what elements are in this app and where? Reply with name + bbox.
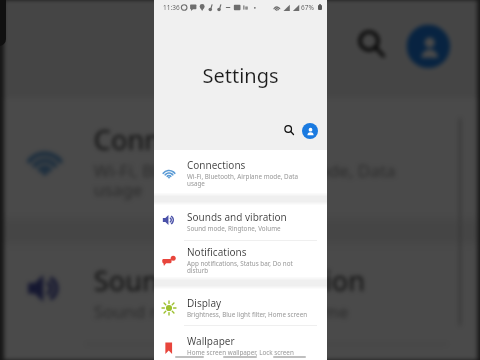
button[interactable]: Recents <box>175 356 204 358</box>
staticText: Brightness, Blue light filter, Home scre… <box>187 310 311 319</box>
staticText: Sound mode, Ringtone, Volume <box>94 299 431 324</box>
staticText: Sound mode, Ringtone, Volume <box>187 224 311 233</box>
staticText: App notifications, Status bar, Do not di… <box>187 259 311 275</box>
staticText: Notifications <box>187 245 247 259</box>
staticText: Wallpaper <box>187 334 235 348</box>
staticText: Home screen wallpaper, Lock screen <box>187 348 311 357</box>
staticText: Sounds and vibration <box>187 210 287 224</box>
button[interactable] <box>154 203 327 236</box>
button[interactable]: Search <box>278 119 299 140</box>
staticText: Connections <box>94 120 254 158</box>
staticText: 67% <box>301 3 314 12</box>
staticText: Settings <box>154 62 327 89</box>
button[interactable] <box>154 151 327 195</box>
staticText: Sounds and vibration <box>94 261 366 299</box>
button[interactable] <box>154 238 327 282</box>
button[interactable] <box>154 289 327 333</box>
button[interactable] <box>154 327 327 360</box>
staticText: Connections <box>187 158 246 172</box>
button[interactable] <box>4 337 477 360</box>
button[interactable]: Account <box>302 123 318 139</box>
staticText: Wi-Fi, Bluetooth, Airplane mode, Data us… <box>187 172 311 188</box>
button[interactable] <box>4 101 477 220</box>
button[interactable]: Account <box>407 25 450 68</box>
staticText: Display <box>187 296 222 310</box>
button[interactable]: Back <box>273 356 306 358</box>
staticText: Wi-Fi, Bluetooth, Airplane mode, Data us… <box>94 158 431 201</box>
button[interactable]: Search <box>341 14 398 71</box>
staticText: 11:36 <box>163 3 180 12</box>
button[interactable] <box>4 242 477 332</box>
button[interactable]: Home <box>223 356 257 358</box>
staticText: Notifications <box>94 356 257 360</box>
